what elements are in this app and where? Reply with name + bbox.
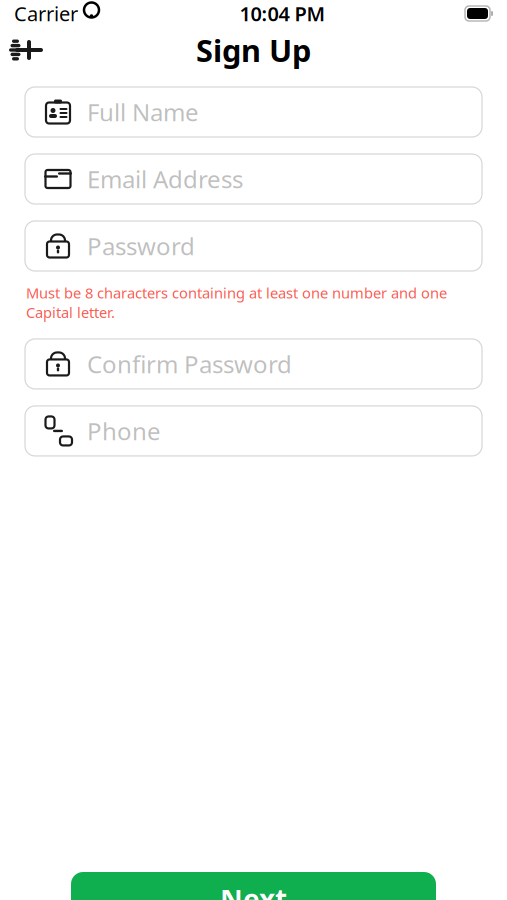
button[interactable]: Phone <box>25 406 482 456</box>
staticText: Next <box>220 880 287 900</box>
staticText: Email Address <box>87 163 243 195</box>
button[interactable]: Back <box>0 28 52 72</box>
staticText: Confirm Password <box>87 348 292 380</box>
staticText: Sign Up <box>196 30 311 70</box>
staticText: Must be 8 characters containing at least… <box>26 283 447 322</box>
button[interactable]: Email Address <box>25 154 482 204</box>
button[interactable]: Confirm Password <box>25 339 482 389</box>
staticText: Carrier <box>14 0 78 27</box>
button[interactable]: Password <box>25 221 482 271</box>
staticText: Password <box>87 230 195 262</box>
staticText: Full Name <box>87 96 199 128</box>
staticText: Phone <box>87 415 161 447</box>
button[interactable]: Next <box>71 872 436 900</box>
button[interactable]: Full Name <box>25 87 482 137</box>
staticText: 10:04 PM <box>239 0 325 27</box>
